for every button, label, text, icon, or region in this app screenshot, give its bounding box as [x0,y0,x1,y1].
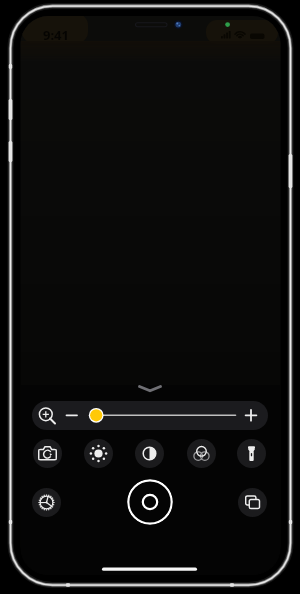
button[interactable]: Zoom level [32,401,268,430]
button[interactable]: Brightness [84,439,113,468]
button[interactable]: Collapse controls [138,381,163,395]
button[interactable]: Settings [32,488,61,517]
button[interactable]: Color filters [187,439,216,468]
staticText: 9:41 [43,26,69,44]
button[interactable]: Flip camera [33,439,62,468]
button[interactable]: Flashlight [237,439,266,468]
button[interactable]: Saved images [238,488,267,517]
button[interactable]: Contrast [135,439,164,468]
button[interactable]: Capture [127,479,173,525]
